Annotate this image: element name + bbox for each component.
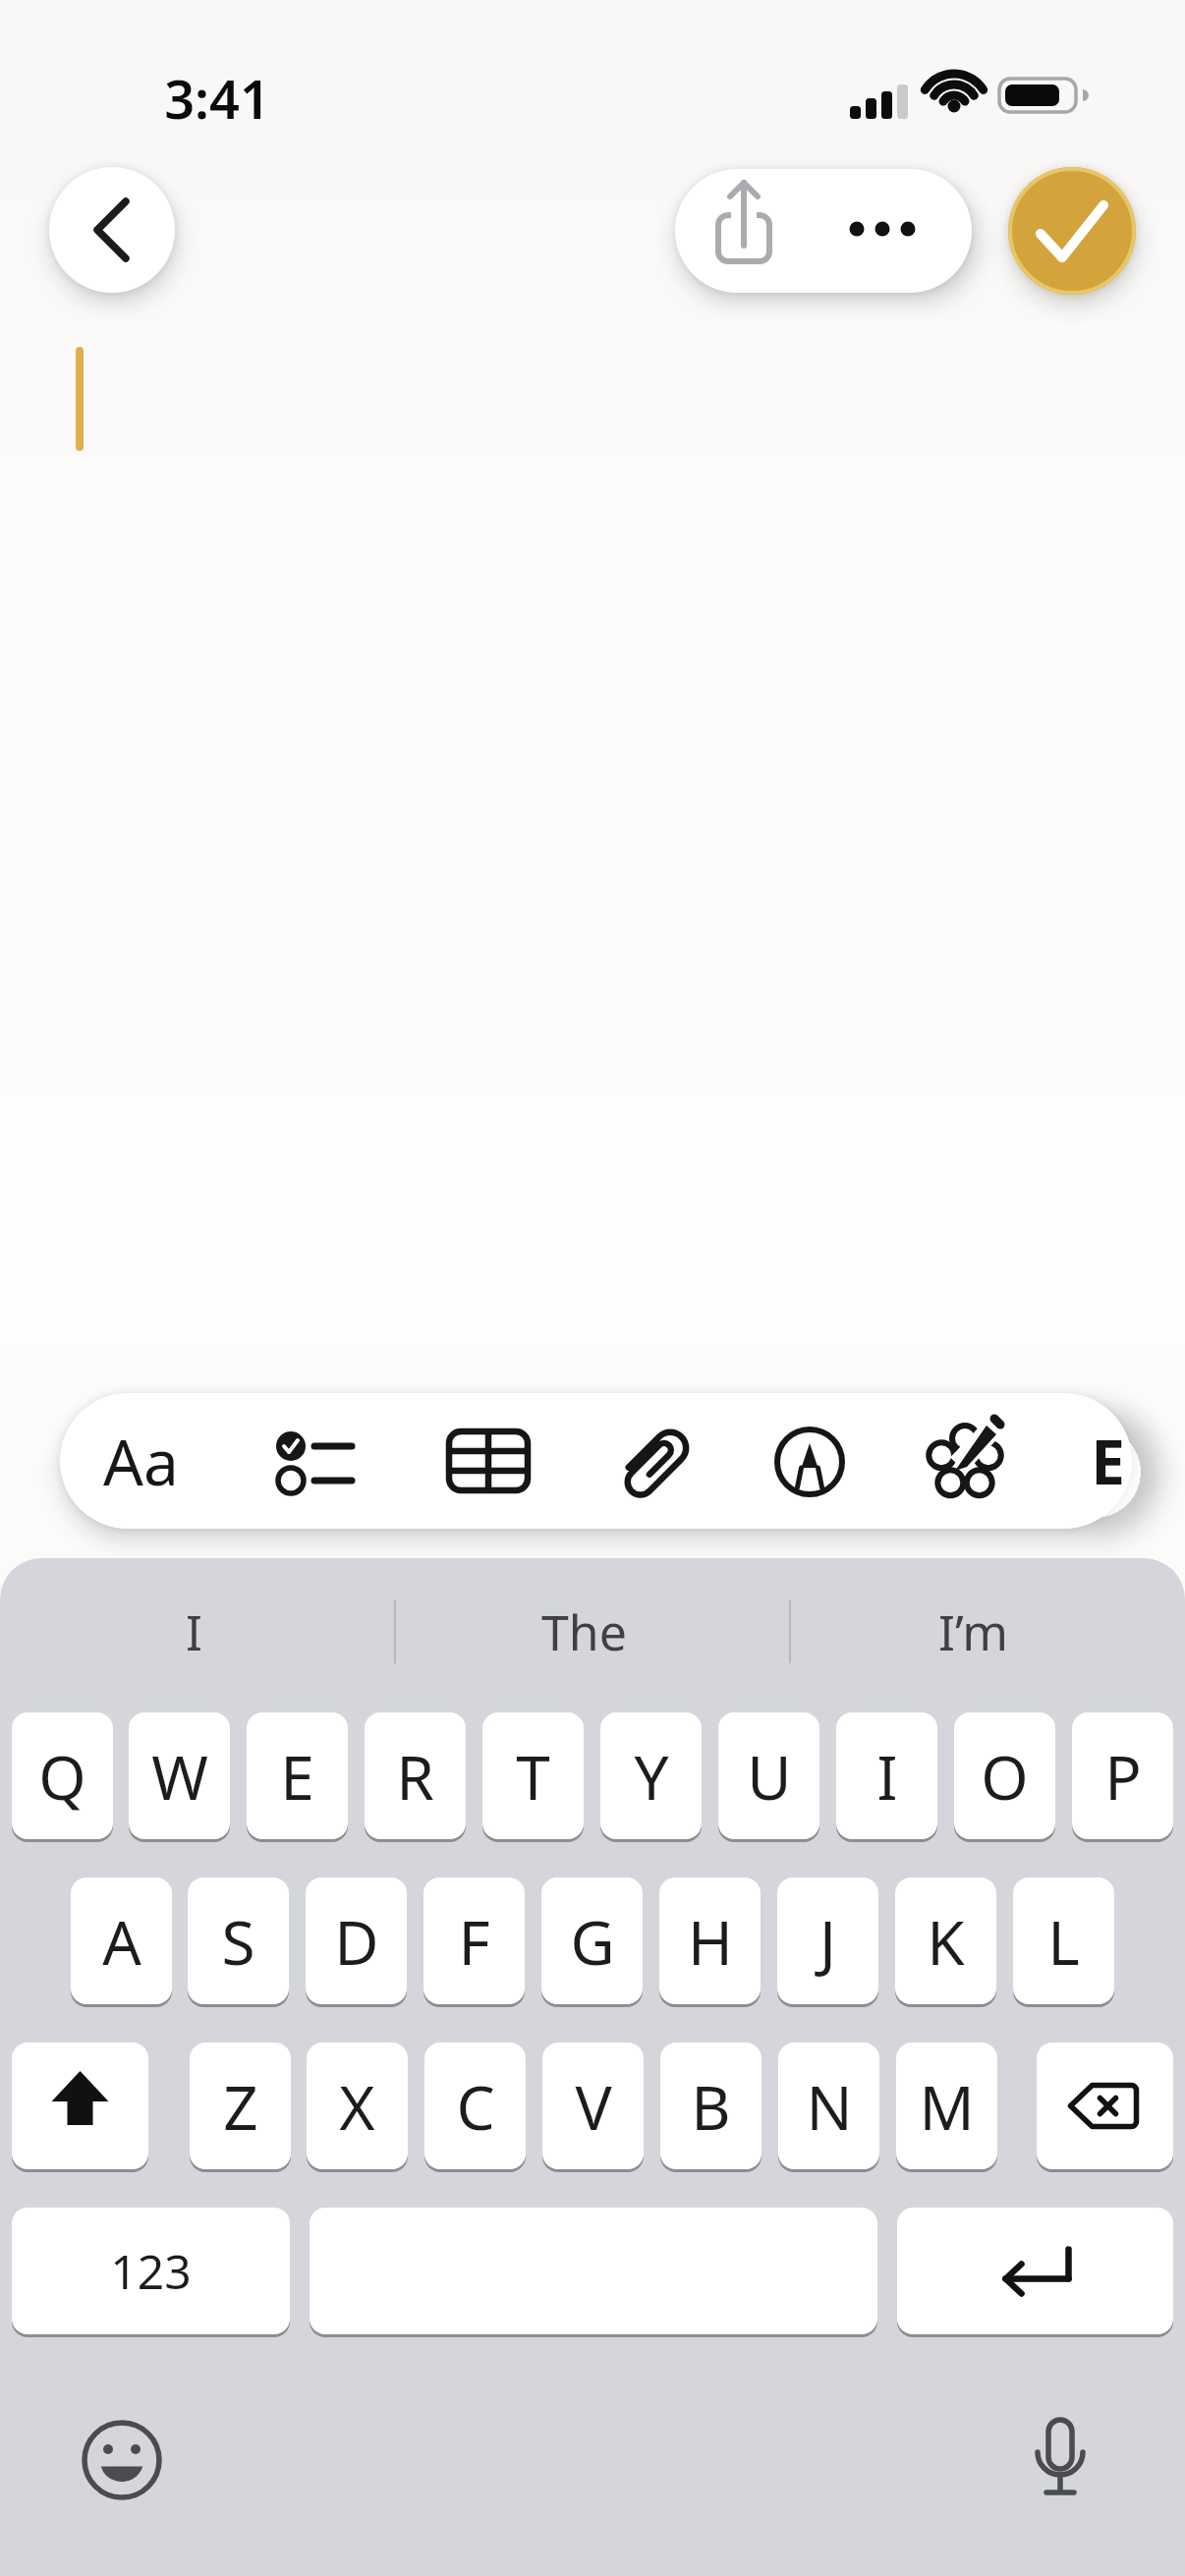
- staticText: I: [186, 1598, 202, 1665]
- staticText: L: [1047, 1900, 1080, 1983]
- staticText: I: [876, 1735, 898, 1818]
- staticText: B: [691, 2065, 731, 2148]
- button[interactable]: S: [188, 1877, 289, 2004]
- staticText: R: [396, 1735, 434, 1818]
- button[interactable]: I: [836, 1712, 937, 1839]
- staticText: A: [102, 1900, 141, 1983]
- staticText: Y: [634, 1735, 669, 1818]
- button[interactable]: R: [365, 1712, 466, 1839]
- staticText: U: [747, 1735, 792, 1818]
- button[interactable]: [49, 167, 175, 293]
- button[interactable]: U: [718, 1712, 819, 1839]
- staticText: X: [339, 2065, 375, 2148]
- button[interactable]: C: [424, 2043, 526, 2169]
- button[interactable]: E: [1073, 1417, 1142, 1505]
- staticText: M: [919, 2065, 975, 2148]
- button[interactable]: D: [306, 1877, 407, 2004]
- button[interactable]: J: [777, 1877, 878, 2004]
- button[interactable]: The: [466, 1597, 702, 1666]
- button[interactable]: N: [778, 2043, 879, 2169]
- staticText: W: [151, 1735, 208, 1818]
- button[interactable]: [607, 1413, 705, 1511]
- button[interactable]: Z: [190, 2043, 291, 2169]
- staticText: The: [541, 1598, 627, 1665]
- button[interactable]: I’m: [875, 1597, 1071, 1666]
- staticText: 123: [110, 2239, 192, 2303]
- staticText: D: [334, 1900, 379, 1983]
- staticText: E: [280, 1735, 314, 1818]
- button[interactable]: [1008, 167, 1136, 295]
- button[interactable]: E: [247, 1712, 348, 1839]
- button[interactable]: X: [307, 2043, 408, 2169]
- button[interactable]: W: [129, 1712, 230, 1839]
- button[interactable]: G: [541, 1877, 643, 2004]
- staticText: I’m: [938, 1598, 1008, 1665]
- button[interactable]: [439, 1422, 537, 1500]
- staticText: G: [570, 1900, 615, 1983]
- button[interactable]: [1017, 2412, 1105, 2510]
- button[interactable]: L: [1013, 1877, 1114, 2004]
- staticText: Z: [223, 2065, 258, 2148]
- button[interactable]: F: [423, 1877, 525, 2004]
- button[interactable]: [1037, 2043, 1173, 2169]
- staticText: O: [981, 1735, 1029, 1818]
- button[interactable]: [310, 2208, 877, 2334]
- staticText: S: [221, 1900, 255, 1983]
- button[interactable]: K: [895, 1877, 996, 2004]
- staticText: J: [819, 1900, 836, 1983]
- button[interactable]: [246, 1415, 364, 1508]
- staticText: N: [806, 2065, 853, 2148]
- button[interactable]: T: [482, 1712, 584, 1839]
- staticText: K: [927, 1900, 965, 1983]
- button[interactable]: [897, 2208, 1173, 2334]
- button[interactable]: [79, 2417, 167, 2505]
- staticText: Aa: [103, 1419, 179, 1504]
- staticText: Q: [38, 1735, 86, 1818]
- button[interactable]: Aa: [77, 1412, 204, 1510]
- staticText: E: [1091, 1420, 1125, 1502]
- button[interactable]: [832, 169, 952, 293]
- staticText: T: [516, 1735, 550, 1818]
- button[interactable]: H: [659, 1877, 761, 2004]
- staticText: C: [456, 2065, 495, 2148]
- button[interactable]: B: [660, 2043, 762, 2169]
- button[interactable]: [916, 1412, 1019, 1515]
- button[interactable]: [12, 2043, 148, 2169]
- button[interactable]: Q: [12, 1712, 113, 1839]
- staticText: 3:41: [164, 62, 270, 131]
- button[interactable]: P: [1072, 1712, 1173, 1839]
- staticText: F: [458, 1900, 490, 1983]
- staticText: P: [1104, 1735, 1142, 1818]
- button[interactable]: [695, 169, 832, 293]
- button[interactable]: I: [95, 1597, 292, 1666]
- button[interactable]: 123: [12, 2208, 290, 2334]
- button[interactable]: Y: [600, 1712, 702, 1839]
- button[interactable]: [772, 1425, 847, 1499]
- button[interactable]: O: [954, 1712, 1055, 1839]
- staticText: V: [575, 2065, 612, 2148]
- button[interactable]: M: [896, 2043, 997, 2169]
- button[interactable]: V: [542, 2043, 644, 2169]
- staticText: H: [688, 1900, 733, 1983]
- button[interactable]: A: [71, 1877, 172, 2004]
